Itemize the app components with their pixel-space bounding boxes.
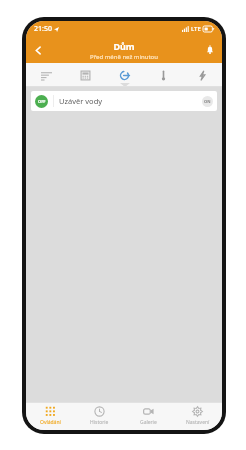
button[interactable]: Energy <box>183 63 222 87</box>
staticText: 21:50 <box>34 24 52 34</box>
staticText: Uzávěr vody <box>59 96 103 106</box>
button[interactable]: Notifications <box>198 37 222 63</box>
button[interactable]: OFF <box>31 91 217 111</box>
button[interactable]: Panels <box>66 63 105 87</box>
button[interactable]: Temperature <box>144 63 183 87</box>
staticText: Nastavení <box>186 419 210 426</box>
staticText: Historie <box>90 419 109 426</box>
button[interactable]: Historie <box>75 402 124 430</box>
staticText: ON <box>204 99 211 104</box>
staticText: Dům <box>113 40 135 52</box>
button[interactable]: List view <box>26 63 66 87</box>
button[interactable]: Switches <box>105 63 144 87</box>
button[interactable]: Galerie <box>124 402 173 430</box>
staticText: Galerie <box>140 419 157 426</box>
staticText: Před méně než minutou <box>90 53 158 61</box>
staticText: OFF <box>38 99 46 104</box>
button[interactable]: Nastavení <box>173 402 222 430</box>
staticText: LTE <box>191 25 201 33</box>
button[interactable]: Back <box>26 37 50 63</box>
button[interactable]: Ovládání <box>26 402 75 430</box>
staticText: Ovládání <box>40 419 61 426</box>
